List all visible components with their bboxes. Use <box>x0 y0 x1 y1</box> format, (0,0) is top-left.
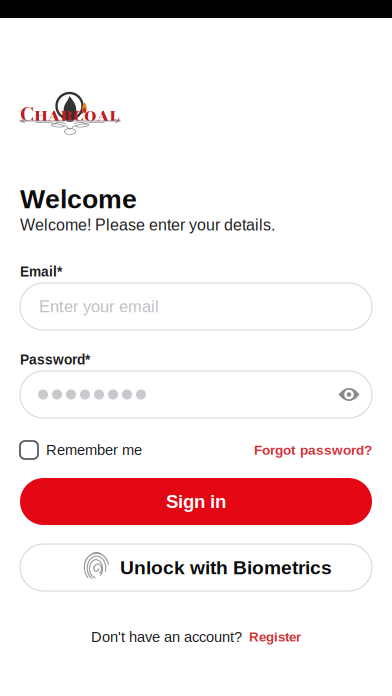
button[interactable]: Forgot password? <box>254 442 372 458</box>
button[interactable]: Remember me <box>20 441 142 459</box>
staticText: Enter your email <box>39 297 159 316</box>
button[interactable]: Show password <box>333 378 365 410</box>
staticText: Password* <box>20 352 90 367</box>
button[interactable]: Register <box>249 630 301 644</box>
staticText: Email* <box>20 264 62 279</box>
staticText: Sign in <box>166 491 226 512</box>
button[interactable]: Sign in <box>20 478 372 525</box>
staticText: Welcome! Please enter your details. <box>20 216 275 234</box>
staticText: Forgot password? <box>254 442 372 458</box>
staticText: Unlock with Biometrics <box>120 557 332 578</box>
staticText: Register <box>249 630 301 644</box>
staticText: Charcoal <box>20 99 119 129</box>
button[interactable]: Unlock with Biometrics <box>20 544 372 591</box>
staticText: Don't have an account? <box>91 629 242 645</box>
staticText: Welcome <box>20 184 137 214</box>
staticText: Remember me <box>46 442 142 458</box>
